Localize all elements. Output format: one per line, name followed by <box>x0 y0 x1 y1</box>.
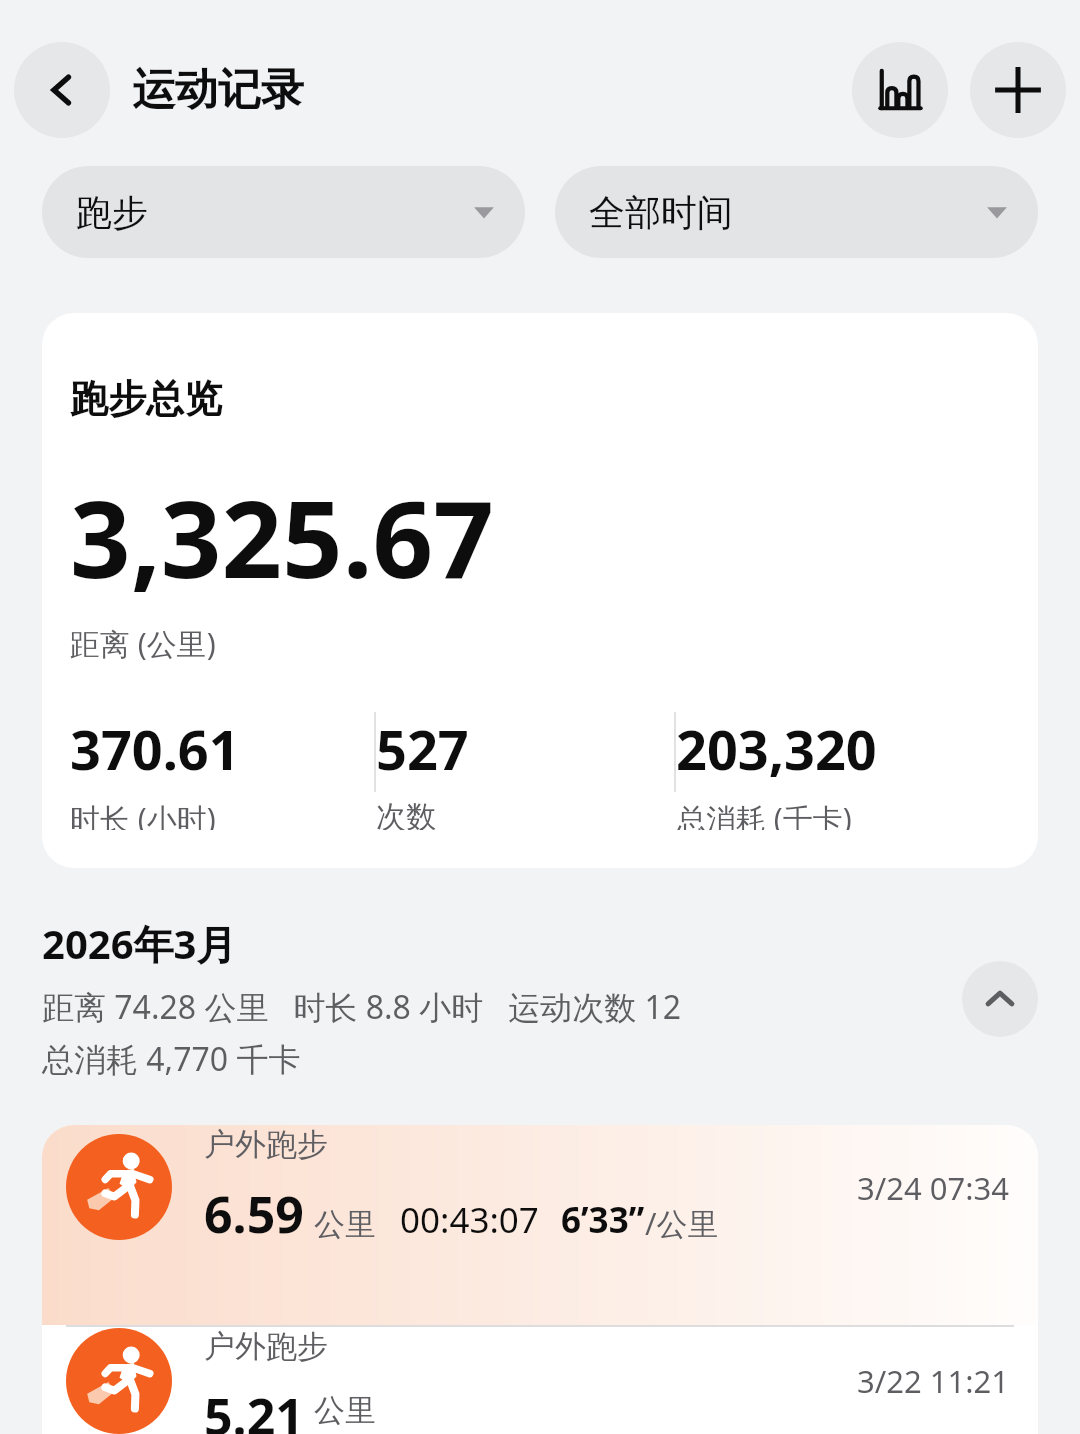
button[interactable]: 2026年3月 <box>42 916 1038 1081</box>
staticText: 5.21 <box>204 1382 304 1434</box>
staticText: 公里 <box>314 1205 376 1244</box>
staticText: 00:43:07 <box>400 1196 539 1244</box>
staticText: 时长 (小时) <box>70 798 216 830</box>
staticText: 3/22 11:21 <box>857 1360 1010 1402</box>
staticText: 距离 (公里) <box>70 623 216 664</box>
staticText: 距离 74.28 公里 时长 8.8 小时 运动次数 12 <box>42 985 682 1029</box>
staticText: 跑步总览 <box>70 375 222 423</box>
staticText: 运动记录 <box>132 63 304 117</box>
staticText: 527 <box>376 712 469 786</box>
staticText: 2026年3月 <box>42 916 237 971</box>
staticText: 户外跑步 <box>204 1125 328 1164</box>
staticText: 跑步 <box>76 190 148 235</box>
button[interactable]: Back <box>14 42 110 138</box>
button[interactable]: 全部时间 <box>555 166 1038 258</box>
staticText: 203,320 <box>676 712 877 786</box>
staticText: 6.59 <box>204 1180 304 1248</box>
staticText: 370.61 <box>70 712 240 786</box>
staticText: 3/24 07:34 <box>857 1167 1010 1209</box>
button[interactable]: 户外跑步 <box>42 1125 1038 1325</box>
button[interactable]: Add record <box>970 42 1066 138</box>
staticText: 次数 <box>376 798 436 830</box>
staticText: 总消耗 (千卡) <box>676 798 852 830</box>
staticText: 总消耗 4,770 千卡 <box>42 1037 301 1081</box>
button[interactable]: 跑步 <box>42 166 525 258</box>
button[interactable]: Statistics chart <box>852 42 948 138</box>
button[interactable]: Collapse month <box>962 961 1038 1037</box>
staticText: 户外跑步 <box>204 1327 328 1366</box>
button[interactable]: 跑步总览 <box>42 313 1038 868</box>
staticText: 3,325.67 <box>70 465 494 609</box>
staticText: 全部时间 <box>589 190 733 235</box>
staticText: 公里 <box>314 1391 376 1430</box>
staticText: 6’33” <box>561 1196 645 1244</box>
staticText: /公里 <box>645 1202 719 1244</box>
button[interactable]: 户外跑步 <box>42 1327 1038 1434</box>
